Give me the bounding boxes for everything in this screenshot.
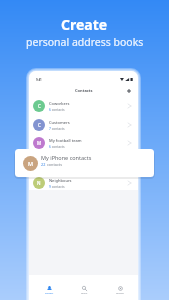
staticText: personal address books <box>26 35 144 49</box>
staticText: M <box>37 140 42 146</box>
button[interactable]: N <box>29 174 138 192</box>
staticText: contacts <box>51 185 65 189</box>
staticText: contacts <box>51 108 65 112</box>
staticText: Create <box>61 15 108 34</box>
staticText: contacts <box>49 164 63 168</box>
staticText: 7 <box>49 127 51 131</box>
button[interactable]: Contacts <box>34 275 64 300</box>
staticText: contacts <box>46 162 62 167</box>
staticText: My iPhone contacts <box>41 154 92 161</box>
button[interactable]: C <box>29 97 138 115</box>
staticText: contacts <box>51 127 65 131</box>
staticText: Search <box>81 292 88 295</box>
staticText: C <box>38 122 41 128</box>
staticText: Neighbours <box>49 178 72 183</box>
staticText: Customers <box>49 120 70 125</box>
staticText: 9:41 <box>36 78 42 82</box>
staticText: M <box>28 160 34 167</box>
button[interactable]: M <box>29 134 138 152</box>
staticText: My football team <box>49 138 82 143</box>
staticText: N <box>37 180 41 186</box>
button[interactable]: Settings <box>105 275 135 300</box>
button[interactable]: Search <box>69 275 99 300</box>
button[interactable]: M <box>15 149 154 177</box>
button[interactable]: contacts <box>29 153 138 171</box>
staticText: Contacts <box>75 88 93 93</box>
staticText: contacts <box>51 145 65 149</box>
staticText: Settings <box>116 292 124 295</box>
button[interactable]: C <box>29 116 138 134</box>
staticText: 6 <box>49 145 51 149</box>
staticText: C <box>38 103 41 109</box>
staticText: 9 <box>49 185 51 189</box>
staticText: 6 <box>49 108 51 112</box>
button[interactable]: Add contact <box>124 86 133 95</box>
staticText: 22 <box>41 162 46 167</box>
staticText: Contacts <box>45 292 54 295</box>
staticText: Coworkers <box>49 101 70 106</box>
